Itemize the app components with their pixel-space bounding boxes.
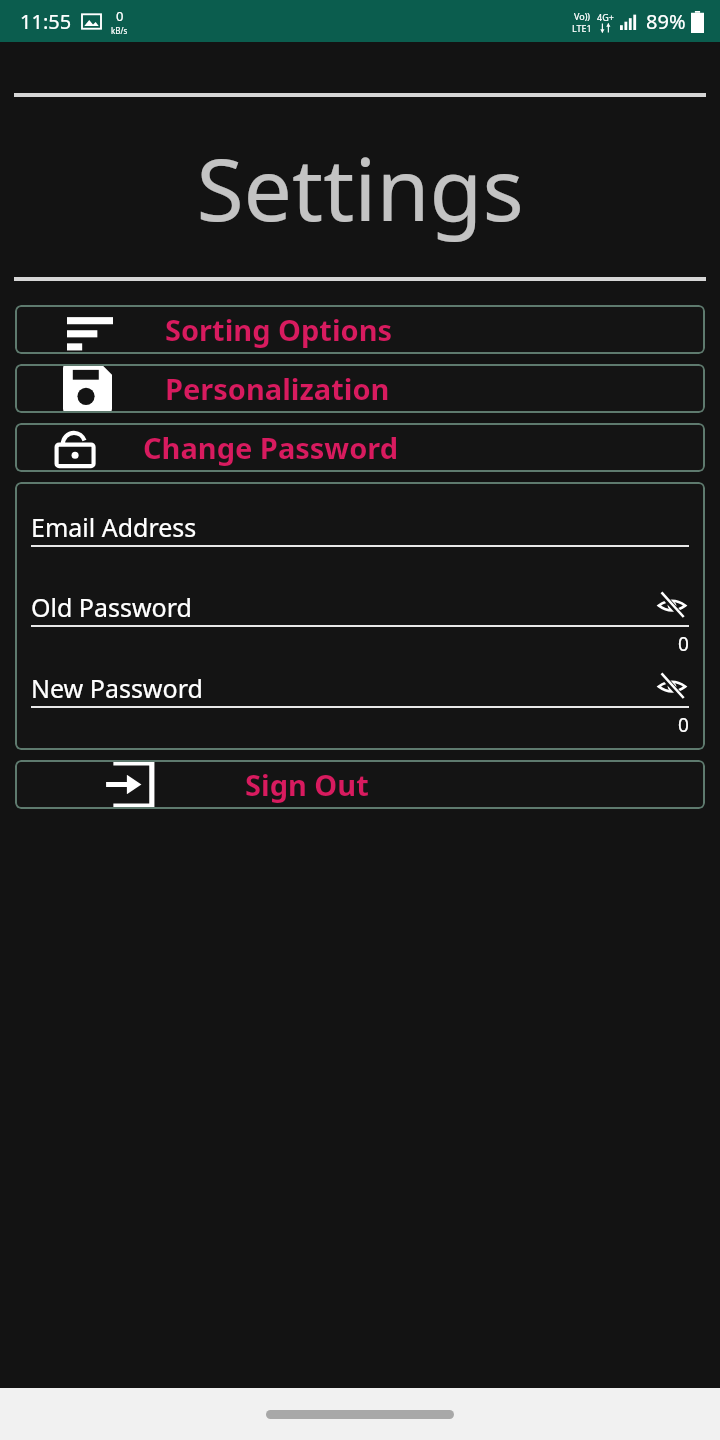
other: Change Password: [51, 423, 107, 472]
staticText: LTE1: [572, 22, 592, 34]
staticText: 0: [678, 712, 689, 738]
staticText: Email Address: [31, 510, 689, 540]
staticText: Settings: [196, 129, 524, 246]
button[interactable]: Change Password: [15, 423, 705, 472]
staticText: kB/s: [111, 25, 128, 36]
staticText: Vo)): [574, 10, 591, 22]
button[interactable]: Sorting Options: [15, 305, 705, 354]
staticText: 11:55: [20, 8, 72, 35]
staticText: Sign Out: [245, 765, 369, 804]
staticText: Change Password: [143, 428, 399, 467]
button[interactable]: Personalization: [15, 364, 705, 413]
staticText: 0: [116, 7, 124, 25]
other: Sorting Options: [67, 307, 113, 353]
other: Sign Out: [104, 760, 156, 809]
button[interactable]: Show password: [655, 590, 689, 620]
other: Personalization: [63, 364, 117, 413]
staticText: Sorting Options: [165, 310, 393, 349]
staticText: New Password: [31, 671, 655, 701]
button[interactable]: Sign Out: [15, 760, 705, 809]
button[interactable]: Show password: [655, 671, 689, 701]
staticText: Old Password: [31, 590, 655, 620]
staticText: 4G+: [597, 11, 614, 23]
staticText: Personalization: [165, 369, 390, 408]
staticText: 0: [678, 631, 689, 657]
staticText: 89%: [646, 8, 686, 35]
